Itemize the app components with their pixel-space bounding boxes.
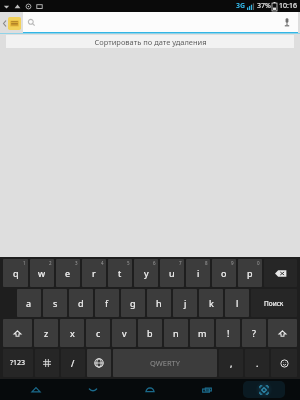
staticText: x: [70, 327, 75, 339]
button[interactable]: ?: [242, 319, 266, 347]
button[interactable]: Сортировать по дате удаления: [6, 35, 294, 48]
button[interactable]: .: [245, 349, 269, 377]
button[interactable]: o: [212, 259, 236, 287]
button[interactable]: t: [108, 259, 132, 287]
staticText: 1: [23, 260, 26, 266]
staticText: 6: [153, 260, 156, 266]
staticText: a: [26, 297, 32, 309]
staticText: n: [173, 327, 179, 339]
staticText: 5: [127, 260, 130, 266]
button[interactable]: Shift: [268, 319, 297, 347]
button[interactable]: u: [160, 259, 184, 287]
staticText: 8: [205, 260, 208, 266]
staticText: f: [105, 297, 109, 309]
button[interactable]: e: [56, 259, 80, 287]
staticText: 9: [231, 260, 234, 266]
staticText: h: [156, 297, 162, 309]
staticText: k: [209, 297, 214, 309]
button[interactable]: m: [190, 319, 214, 347]
button[interactable]: a: [17, 289, 41, 317]
staticText: ,: [230, 357, 233, 369]
button[interactable]: Keyboard settings: [35, 349, 59, 377]
button[interactable]: v: [112, 319, 136, 347]
staticText: 10:16: [279, 1, 297, 11]
staticText: j: [184, 297, 187, 309]
staticText: g: [130, 297, 136, 309]
staticText: ?123: [10, 358, 26, 368]
button[interactable]: q: [3, 259, 28, 287]
button[interactable]: s: [43, 289, 67, 317]
staticText: 7: [179, 260, 182, 266]
button[interactable]: z: [34, 319, 58, 347]
button[interactable]: n: [164, 319, 188, 347]
staticText: 0: [257, 260, 260, 266]
button[interactable]: y: [134, 259, 158, 287]
button[interactable]: /: [61, 349, 85, 377]
button[interactable]: Navigate up: [0, 12, 23, 34]
button[interactable]: d: [69, 289, 93, 317]
button[interactable]: p: [238, 259, 262, 287]
button[interactable]: ?123: [3, 349, 33, 377]
button[interactable]: Поиск: [251, 289, 297, 317]
staticText: 37%: [257, 1, 271, 11]
staticText: m: [198, 327, 207, 339]
staticText: q: [13, 267, 19, 279]
staticText: ?: [252, 327, 256, 339]
staticText: d: [78, 297, 84, 309]
staticText: 2: [49, 260, 52, 266]
staticText: e: [65, 267, 71, 279]
staticText: t: [118, 267, 122, 279]
staticText: i: [197, 267, 200, 279]
staticText: !: [227, 327, 230, 339]
staticText: v: [122, 327, 127, 339]
staticText: y: [144, 267, 149, 279]
button[interactable]: Back: [72, 380, 114, 399]
staticText: r: [92, 267, 96, 279]
staticText: 4: [101, 260, 104, 266]
staticText: z: [44, 327, 49, 339]
button[interactable]: f: [95, 289, 119, 317]
button[interactable]: x: [60, 319, 84, 347]
staticText: u: [169, 267, 175, 279]
staticText: 3: [75, 260, 78, 266]
button[interactable]: ,: [219, 349, 243, 377]
staticText: w: [38, 267, 46, 279]
staticText: s: [53, 297, 58, 309]
staticText: Сортировать по дате удаления: [94, 37, 207, 47]
staticText: Поиск: [264, 299, 284, 308]
button[interactable]: Change language: [87, 349, 111, 377]
button[interactable]: Emoji: [271, 349, 297, 377]
staticText: /: [71, 357, 75, 369]
staticText: QWERTY: [150, 358, 181, 368]
button[interactable]: b: [138, 319, 162, 347]
staticText: .: [256, 357, 259, 369]
button[interactable]: Voice search: [23, 12, 298, 34]
staticText: l: [236, 297, 239, 309]
button[interactable]: Shift: [3, 319, 32, 347]
button[interactable]: h: [147, 289, 171, 317]
staticText: b: [147, 327, 153, 339]
staticText: o: [221, 267, 227, 279]
button[interactable]: g: [121, 289, 145, 317]
staticText: p: [247, 267, 253, 279]
button[interactable]: c: [86, 319, 110, 347]
button[interactable]: Home: [129, 380, 171, 399]
staticText: c: [96, 327, 101, 339]
button[interactable]: w: [30, 259, 54, 287]
button[interactable]: j: [173, 289, 197, 317]
button[interactable]: Recent apps: [186, 380, 228, 399]
button[interactable]: l: [225, 289, 249, 317]
button[interactable]: Hide keyboard: [15, 380, 57, 399]
button[interactable]: QWERTY: [113, 349, 217, 377]
button[interactable]: Screenshot: [243, 381, 285, 398]
button[interactable]: r: [82, 259, 106, 287]
button[interactable]: [264, 259, 297, 287]
button[interactable]: !: [216, 319, 240, 347]
staticText: 3G: [236, 1, 246, 11]
button[interactable]: Voice search: [282, 17, 292, 27]
button[interactable]: i: [186, 259, 210, 287]
button[interactable]: k: [199, 289, 223, 317]
